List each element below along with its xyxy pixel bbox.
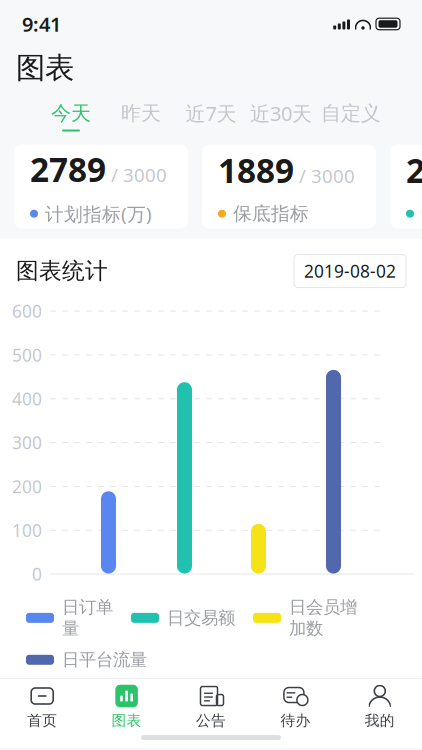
staticText: 计划指标(万) [45,201,152,226]
staticText: 近7天 [185,100,236,127]
staticText: 2789 [406,148,422,192]
staticText: 2789 [30,147,106,191]
staticText: 图表统计 [16,257,108,285]
staticText: 图表 [112,711,142,729]
staticText: 今天 [51,101,91,126]
staticText: / 3000 [299,163,355,188]
button[interactable]: 图表 [84,678,169,729]
staticText: 300 [12,431,42,454]
staticText: 保底指标 [233,202,309,225]
staticText: 500 [12,343,42,366]
button[interactable]: 待办 [253,678,338,729]
button[interactable]: 自定义 [316,99,386,134]
staticText: 全年指标 [421,202,422,225]
staticText: 9:41 [22,11,61,37]
button[interactable]: 近30天 [246,98,316,135]
button[interactable]: 近7天 [176,98,246,135]
staticText: 1889 [218,148,294,192]
staticText: 昨天 [121,101,161,126]
staticText: 图表 [16,50,74,86]
staticText: 2019-08-02 [304,260,396,283]
staticText: 日会员增加数 [289,597,357,639]
button[interactable]: 我的 [338,678,422,729]
staticText: 400 [12,387,42,410]
staticText: 100 [12,519,42,542]
staticText: 自定义 [321,101,381,126]
staticText: 近30天 [250,100,312,127]
button[interactable]: 昨天 [106,99,176,134]
button[interactable]: 今天 [36,99,106,134]
staticText: 200 [12,475,42,498]
staticText: 我的 [365,711,395,729]
button[interactable]: 2019-08-02 [294,255,406,288]
staticText: 600 [12,300,42,323]
staticText: 日平台流量 [62,649,147,670]
staticText: 首页 [27,711,57,729]
staticText: / 3000 [111,162,167,187]
button[interactable]: 首页 [0,678,84,729]
staticText: 待办 [280,711,310,729]
staticText: 日交易额 [167,607,235,628]
button[interactable]: 公告 [169,678,253,729]
staticText: 0 [32,563,42,586]
staticText: 日订单量 [62,597,113,639]
staticText: 公告 [196,711,226,729]
